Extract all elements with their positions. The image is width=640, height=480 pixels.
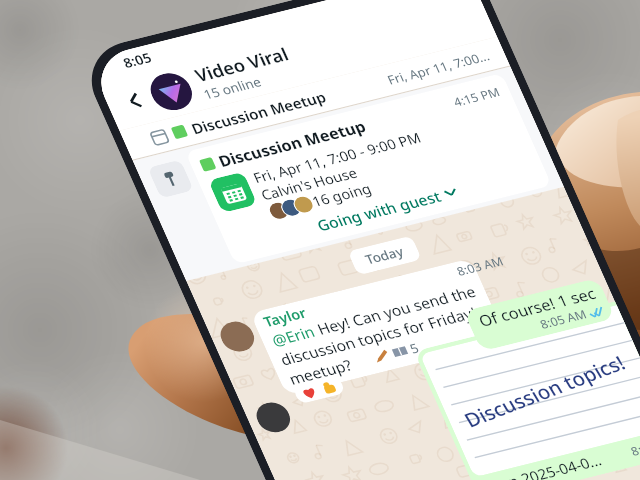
staticText: Calvin's House [253,132,366,236]
staticText: 4:15 PM [446,69,508,126]
button[interactable] [287,360,351,420]
button[interactable]: Going with guest [227,62,545,355]
button[interactable]: Back [104,72,165,129]
staticText: 8:03 AM [449,238,511,295]
staticText: Going with guest [307,144,450,276]
staticText: Discussion topics! [437,292,640,480]
staticText: 8:05 [115,39,160,81]
staticText: Today [358,230,412,281]
staticText: Discussion Meetup [182,42,335,183]
staticText: 5 [402,336,427,360]
button[interactable]: Discussion Meetup [151,0,586,370]
staticText: Of course! 1 sec [469,244,605,369]
staticText: 16 going [304,160,380,230]
staticText: meetup? [279,333,361,409]
button[interactable]: Group avatar [134,56,209,127]
button[interactable]: Of course! 1 sec [451,233,628,396]
staticText: @Erin [262,305,328,365]
button[interactable]: Taylor [225,184,532,469]
staticText: discussion topics for Friday's [271,233,492,437]
button[interactable]: Discussion topics! [368,234,640,480]
staticText: Fri, Apr 11, 7:00... [380,13,497,121]
staticText: 15 online [196,54,270,122]
button[interactable]: Discussion Meetup [111,0,519,286]
staticText: Taylor [255,290,315,345]
staticText: Hey! Can you send the [308,228,485,391]
staticText: Video Viral [184,11,299,118]
staticText: Fri, Apr 11, 7:00 - 9:00 PM [245,73,429,243]
staticText: Scan 2025-04-0... [476,412,610,480]
staticText: 8:05 AM [533,291,594,348]
staticText: 8:05 AM [624,418,640,475]
staticText: Discussion Meetup [209,67,375,220]
